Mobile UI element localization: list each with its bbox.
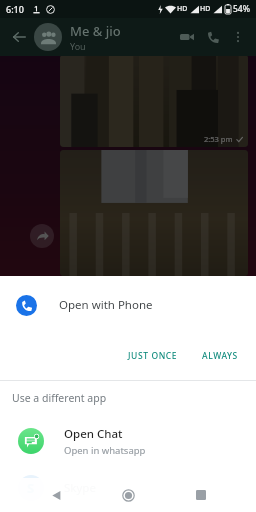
button[interactable]	[60, 150, 248, 276]
staticText: Open in whatsapp	[64, 444, 146, 457]
staticText: 6:10	[6, 3, 24, 15]
staticText: HD	[177, 4, 188, 14]
button[interactable]: ALWAYS	[194, 344, 246, 368]
button[interactable]: Recent apps	[184, 478, 218, 512]
button[interactable]: Open with Phone	[0, 276, 256, 334]
button[interactable]: 2:53 pm	[60, 55, 248, 147]
staticText: HD	[200, 4, 211, 14]
button[interactable]: Back	[6, 24, 32, 50]
staticText: Use a different app	[12, 391, 107, 405]
button[interactable]: Home	[111, 478, 145, 512]
button[interactable]: Open Chat	[0, 417, 256, 465]
button[interactable]: Voice call	[200, 24, 226, 50]
button[interactable]: JUST ONCE	[120, 344, 186, 368]
staticText: Open with Phone	[59, 297, 153, 313]
staticText: 2:53 pm	[204, 134, 233, 144]
staticText: Open Chat	[64, 426, 123, 442]
staticText: 54%	[233, 3, 250, 15]
button[interactable]: More options	[226, 25, 250, 49]
button[interactable]: Me & jio	[70, 22, 174, 52]
staticText: Me & jio	[70, 22, 121, 40]
staticText: ALWAYS	[202, 350, 238, 362]
button[interactable]: Back	[39, 478, 73, 512]
button[interactable]: S	[0, 465, 256, 511]
staticText: JUST ONCE	[128, 350, 178, 362]
button[interactable]: Forward	[30, 224, 54, 248]
button[interactable]: Group photo	[34, 23, 62, 51]
staticText: You	[70, 40, 86, 52]
button[interactable]: Video call	[174, 24, 200, 50]
